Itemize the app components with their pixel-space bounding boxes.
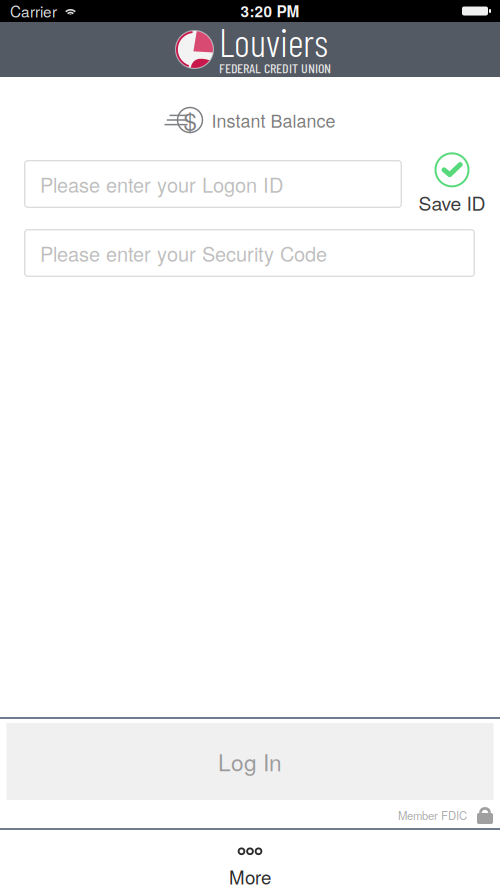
staticText: 3:20 PM [240, 1, 299, 21]
button[interactable]: Log In [6, 723, 493, 800]
button[interactable]: Save ID [425, 157, 479, 211]
staticText: FEDERAL CREDIT UNION [219, 60, 331, 76]
staticText: Log In [218, 746, 282, 777]
staticText: Please enter your Logon ID [40, 170, 283, 198]
staticText: Save ID [418, 189, 485, 216]
staticText: Instant Balance [211, 108, 335, 132]
staticText: $ [183, 106, 196, 134]
button[interactable]: More [0, 830, 500, 889]
staticText: Please enter your Security Code [40, 239, 327, 267]
staticText: Member FDIC [398, 806, 467, 824]
staticText: Louviers [219, 23, 328, 60]
staticText: Carrier [10, 1, 57, 21]
button[interactable]: $ [164, 107, 335, 133]
staticText: More [229, 864, 271, 889]
